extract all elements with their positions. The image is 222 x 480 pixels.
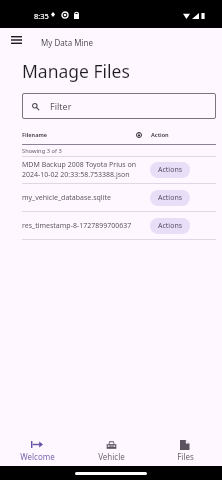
staticText: Manage Files bbox=[22, 59, 130, 83]
button[interactable]: Actions bbox=[150, 190, 190, 206]
staticText: Vehicle bbox=[98, 451, 125, 462]
button[interactable]: Welcome bbox=[0, 426, 74, 462]
button[interactable]: Files bbox=[148, 426, 222, 462]
button[interactable]: Actions bbox=[150, 218, 190, 234]
staticText: my_vehicle_database.sqlite bbox=[22, 193, 150, 203]
staticText: Actions bbox=[158, 221, 183, 231]
staticText: My Data Mine bbox=[41, 37, 93, 48]
staticText: Actions bbox=[158, 165, 183, 175]
staticText: Showing 3 of 3 bbox=[22, 147, 62, 155]
button[interactable]: Open navigation menu bbox=[5, 29, 27, 51]
button[interactable]: Actions bbox=[150, 162, 190, 178]
staticText: Action bbox=[151, 131, 169, 138]
staticText: Welcome bbox=[20, 451, 55, 462]
staticText: 8:35 bbox=[34, 11, 49, 21]
button[interactable]: Filter bbox=[22, 93, 216, 119]
staticText: Filename bbox=[22, 131, 48, 138]
staticText: Actions bbox=[158, 193, 183, 203]
button[interactable]: Vehicle bbox=[74, 426, 148, 462]
staticText: Files bbox=[177, 451, 194, 462]
staticText: MDM Backup 2008 Toyota Prius on 2024-10-… bbox=[22, 160, 150, 180]
staticText: res_timestamp-8-1727899700637 bbox=[22, 221, 150, 231]
staticText: Filter bbox=[50, 100, 72, 112]
